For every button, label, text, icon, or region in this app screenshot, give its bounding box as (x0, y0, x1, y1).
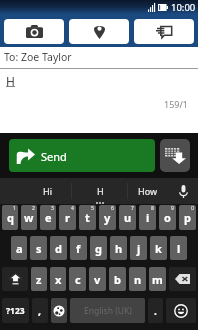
staticText: o (164, 210, 171, 225)
button[interactable]: Voice input (168, 178, 198, 204)
button[interactable]: c (69, 267, 86, 291)
button[interactable]: h (110, 236, 127, 260)
staticText: b (114, 272, 121, 287)
staticText: x (55, 272, 62, 287)
staticText: p (184, 210, 191, 225)
staticText: r (65, 210, 70, 225)
button[interactable]: Hi (0, 178, 71, 204)
staticText: a (16, 241, 23, 256)
button[interactable]: u (119, 205, 136, 230)
button[interactable]: How (128, 178, 168, 204)
button[interactable]: Hide keyboard (160, 139, 190, 172)
button[interactable]: Location (69, 19, 129, 44)
button[interactable]: s (30, 236, 47, 260)
staticText: f (76, 241, 81, 256)
button[interactable]: g (90, 236, 107, 260)
button[interactable]: H (72, 178, 127, 204)
staticText: z (36, 272, 42, 287)
staticText: g (95, 241, 102, 256)
staticText: e (45, 210, 52, 225)
staticText: ?123 (6, 305, 25, 317)
button[interactable]: Messages (134, 19, 194, 44)
button[interactable]: i (139, 205, 156, 230)
staticText: k (155, 241, 162, 256)
button[interactable]: l (170, 236, 187, 260)
staticText: To: Zoe Taylor (4, 50, 72, 64)
staticText: . (154, 304, 157, 318)
staticText: 6 (111, 205, 114, 212)
staticText: i (146, 210, 150, 225)
button[interactable]: m (149, 267, 166, 291)
staticText: j (137, 241, 141, 256)
button[interactable]: Emoji (166, 298, 196, 323)
button[interactable]: r (59, 205, 76, 230)
button[interactable]: b (109, 267, 126, 291)
button[interactable]: Change language (51, 298, 67, 323)
staticText: c (75, 272, 81, 287)
button[interactable]: a (11, 236, 27, 260)
staticText: 3 (51, 205, 54, 212)
button[interactable]: Backspace (169, 267, 196, 291)
button[interactable]: ?123 (2, 298, 29, 323)
button[interactable]: English (UK) (70, 298, 145, 323)
button[interactable]: q (2, 205, 18, 230)
staticText: h (115, 241, 123, 256)
button[interactable]: t (79, 205, 96, 230)
staticText: 2 (32, 205, 35, 212)
staticText: , (38, 303, 42, 318)
staticText: 10:00 (171, 1, 196, 14)
button[interactable]: d (50, 236, 67, 260)
staticText: w (24, 210, 34, 225)
staticText: 1 (13, 205, 16, 212)
staticText: m (152, 272, 163, 287)
button[interactable]: , (32, 298, 48, 323)
staticText: y (104, 210, 111, 225)
button[interactable]: w (21, 205, 37, 230)
button[interactable]: n (129, 267, 146, 291)
staticText: How (138, 185, 158, 197)
staticText: 0 (191, 205, 194, 212)
staticText: s (36, 241, 42, 256)
staticText: Send (41, 149, 67, 164)
staticText: d (55, 241, 62, 256)
staticText: Hi (43, 185, 52, 197)
staticText: t (85, 210, 90, 225)
button[interactable]: v (89, 267, 106, 291)
staticText: 159/1 (164, 98, 188, 110)
staticText: q (7, 210, 14, 225)
button[interactable]: j (130, 236, 147, 260)
button[interactable]: k (150, 236, 167, 260)
staticText: 7 (131, 205, 134, 212)
button[interactable]: p (179, 205, 196, 230)
staticText: l (177, 241, 181, 256)
staticText: 8 (151, 205, 154, 212)
button[interactable]: o (159, 205, 176, 230)
button[interactable]: Send (9, 139, 155, 172)
button[interactable]: Camera (4, 19, 64, 44)
staticText: 5 (91, 205, 94, 212)
button[interactable]: . (148, 298, 163, 323)
button[interactable]: z (31, 267, 47, 291)
staticText: H (97, 185, 104, 197)
staticText: H (6, 73, 15, 89)
staticText: 4 (71, 205, 74, 212)
button[interactable]: y (99, 205, 116, 230)
staticText: 9 (171, 205, 174, 212)
staticText: n (134, 272, 142, 287)
button[interactable]: Shift (2, 267, 28, 291)
button[interactable]: e (40, 205, 56, 230)
staticText: English (UK) (84, 305, 132, 317)
staticText: u (124, 210, 132, 225)
button[interactable]: x (50, 267, 66, 291)
button[interactable]: f (70, 236, 87, 260)
staticText: v (94, 272, 101, 287)
